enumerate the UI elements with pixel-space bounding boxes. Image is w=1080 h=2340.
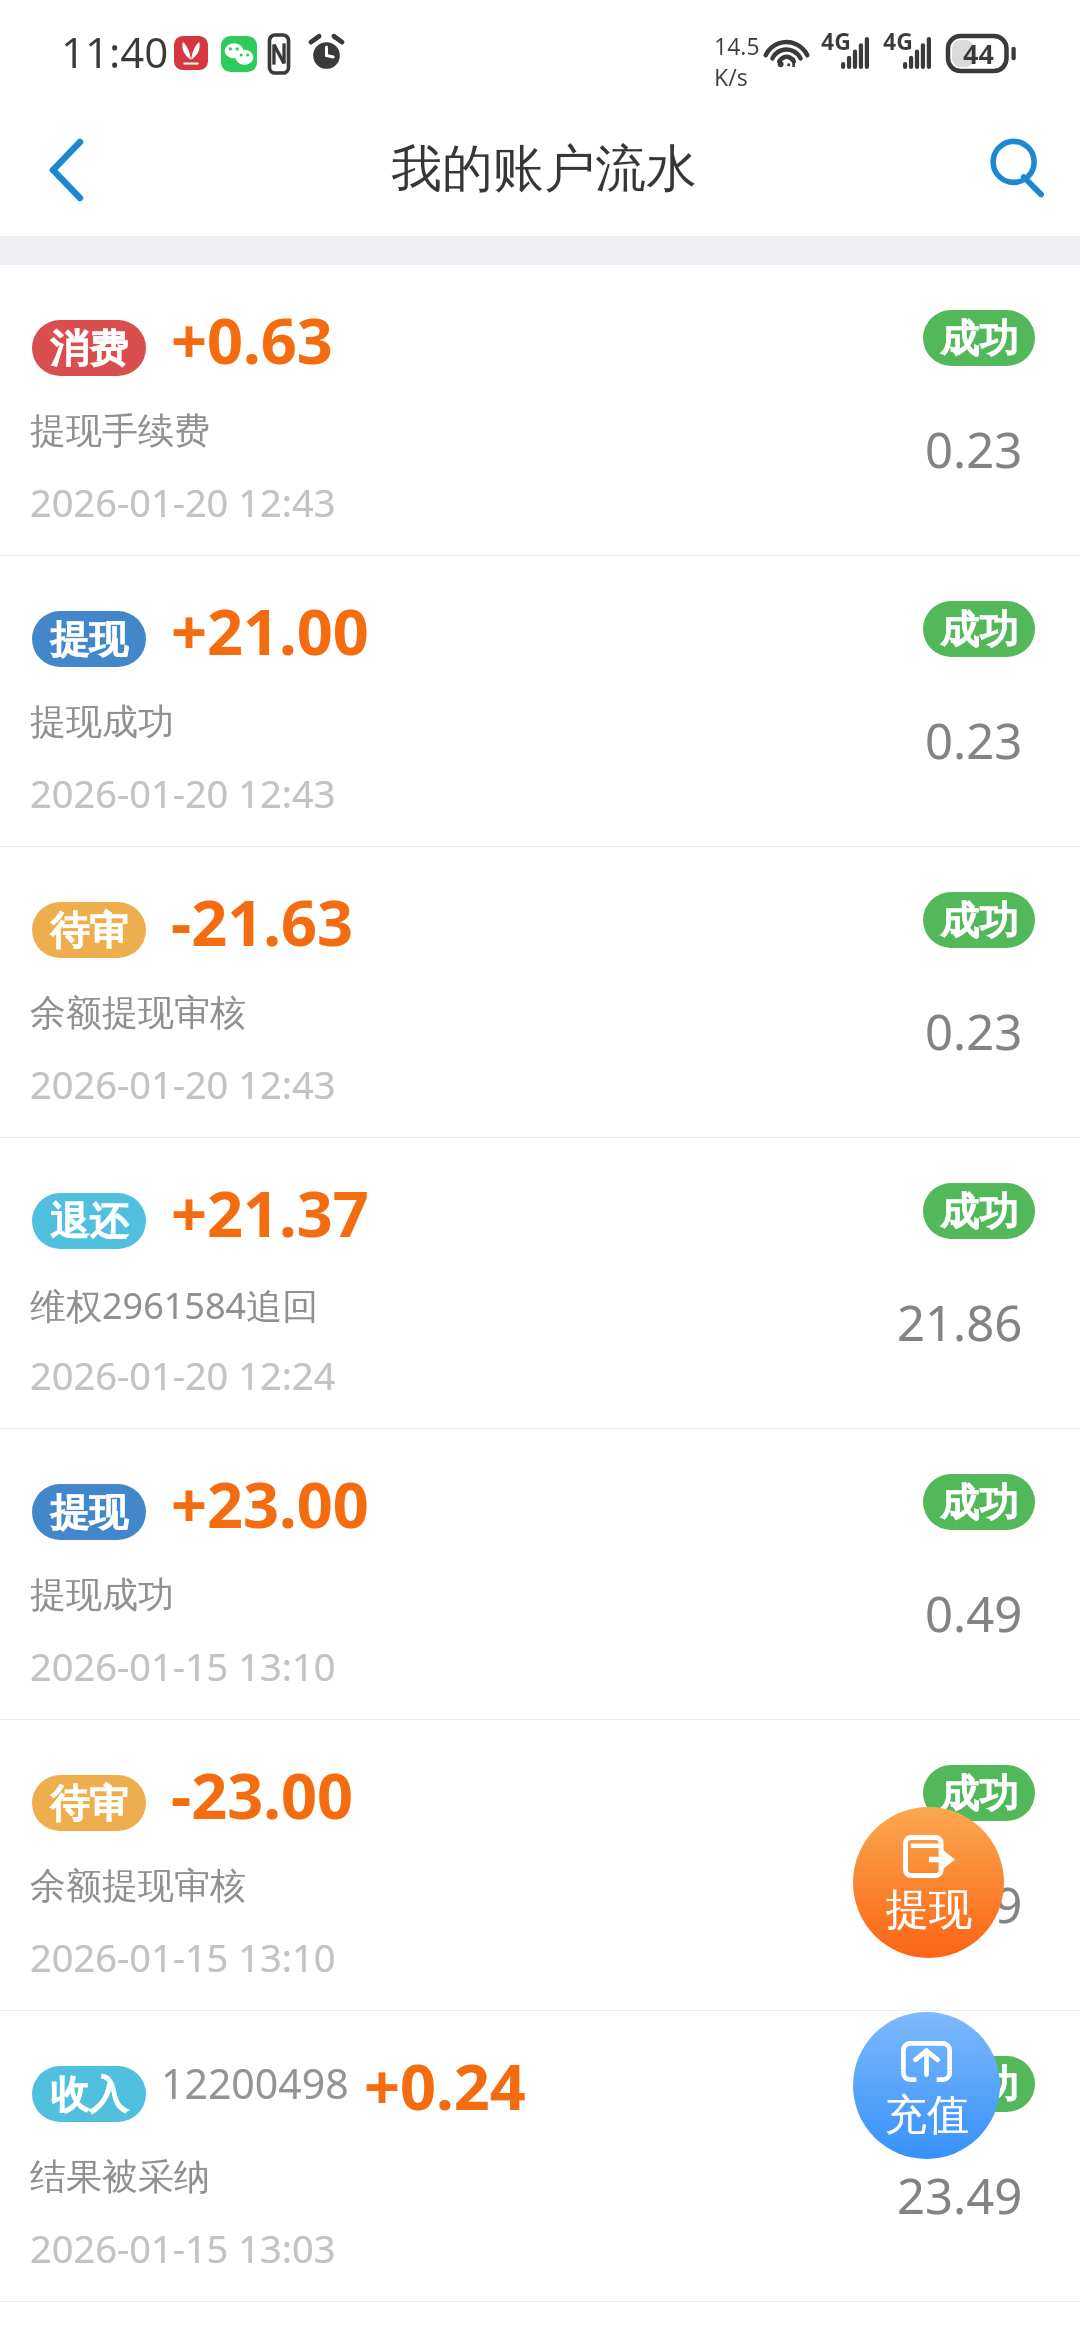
staticText: 提现手续费: [30, 408, 210, 453]
staticText: 结果被采纳: [30, 2154, 210, 2199]
staticText: 0.49: [925, 1580, 1023, 1647]
staticText: 12200498: [161, 2055, 349, 2111]
staticText: 4G: [883, 25, 913, 56]
staticText: -23.00: [171, 1752, 354, 1838]
staticText: 2026-01-15 13:10: [30, 1640, 336, 1692]
staticText: +21.00: [171, 588, 369, 674]
staticText: 2026-01-20 12:24: [30, 1349, 336, 1401]
staticText: -21.63: [171, 879, 354, 965]
staticText: 0.23: [925, 416, 1023, 483]
button[interactable]: 提现: [0, 1429, 1080, 1720]
button[interactable]: 消费: [0, 265, 1080, 556]
staticText: +21.37: [171, 1170, 369, 1256]
staticText: 成功: [940, 1187, 1018, 1236]
staticText: 提现: [886, 1883, 972, 1937]
staticText: 余额提现审核: [30, 1863, 246, 1908]
staticText: 维权2961584追回: [30, 1281, 319, 1330]
staticText: 2026-01-20 12:43: [30, 767, 336, 819]
staticText: 成功: [940, 1769, 1018, 1818]
button[interactable]: Back: [12, 116, 120, 224]
staticText: 消费: [50, 324, 128, 373]
staticText: 成功: [940, 2060, 1018, 2109]
staticText: 收入: [50, 2070, 128, 2119]
button[interactable]: 退还: [0, 1138, 1080, 1429]
staticText: 21.86: [897, 1289, 1023, 1356]
button[interactable]: 收入: [0, 2011, 1080, 2302]
staticText: 充值: [885, 2089, 969, 2142]
button[interactable]: Search: [965, 118, 1069, 222]
staticText: 成功: [940, 896, 1018, 945]
button[interactable]: 提现 Withdraw: [853, 1807, 1004, 1958]
staticText: 4G: [821, 25, 851, 56]
staticText: 0.23: [925, 998, 1023, 1065]
button[interactable]: 待审: [0, 1720, 1080, 2011]
button[interactable]: 充值 Recharge: [853, 2012, 1000, 2159]
staticText: +23.00: [171, 1461, 369, 1547]
staticText: 23.49: [897, 1871, 1023, 1938]
staticText: 2026-01-15 13:03: [30, 2222, 336, 2274]
staticText: 待审: [50, 1779, 128, 1828]
staticText: 11:40: [61, 23, 169, 80]
staticText: 退还: [50, 1197, 128, 1246]
staticText: +0.24: [364, 2043, 526, 2129]
staticText: 44: [963, 35, 994, 72]
staticText: 提现: [50, 615, 128, 664]
staticText: 我的账户流水: [391, 137, 697, 201]
staticText: 成功: [940, 1478, 1018, 1527]
staticText: 23.49: [897, 2162, 1023, 2229]
button[interactable]: 提现: [0, 556, 1080, 847]
staticText: 提现成功: [30, 1572, 174, 1617]
staticText: 待审: [50, 906, 128, 955]
button[interactable]: 待审: [0, 847, 1080, 1138]
staticText: +0.63: [171, 297, 333, 383]
staticText: 余额提现审核: [30, 990, 246, 1035]
staticText: 14.5: [714, 30, 760, 61]
staticText: 提现成功: [30, 699, 174, 744]
staticText: K/s: [714, 61, 748, 92]
staticText: 2026-01-20 12:43: [30, 476, 336, 528]
staticText: 2026-01-15 13:10: [30, 1931, 336, 1983]
staticText: 成功: [940, 605, 1018, 654]
staticText: 成功: [940, 314, 1018, 363]
staticText: 提现: [50, 1488, 128, 1537]
staticText: 2026-01-20 12:43: [30, 1058, 336, 1110]
staticText: 0.23: [925, 707, 1023, 774]
